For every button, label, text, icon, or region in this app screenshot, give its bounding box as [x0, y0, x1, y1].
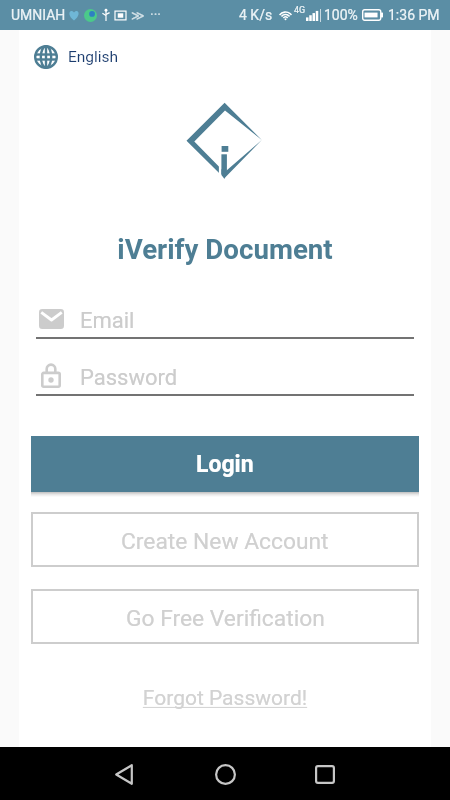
button[interactable]: English — [34, 45, 119, 69]
button[interactable]: Back — [100, 750, 148, 798]
staticText: Email — [80, 308, 135, 334]
staticText: Go Free Verification — [126, 605, 325, 632]
staticText: Password — [80, 365, 178, 391]
staticText: Login — [196, 451, 254, 478]
staticText: UMNIAH — [11, 7, 66, 23]
button[interactable]: Login — [31, 436, 419, 492]
staticText: 4 K/s — [239, 7, 273, 23]
staticText: English — [68, 48, 119, 66]
staticText: iVerify Document — [0, 233, 450, 265]
button[interactable]: Create New Account — [31, 512, 419, 567]
staticText: ≫ — [131, 8, 145, 23]
staticText: Create New Account — [121, 528, 329, 555]
staticText: 1:36 PM — [388, 7, 440, 23]
button[interactable]: Go Free Verification — [31, 589, 419, 644]
button[interactable]: Home — [201, 750, 249, 798]
staticText: ··· — [150, 7, 161, 23]
button[interactable]: Forgot Password! — [0, 686, 450, 711]
button[interactable]: Recents — [301, 750, 349, 798]
staticText: 4G — [294, 5, 306, 16]
staticText: 100% — [324, 7, 358, 23]
